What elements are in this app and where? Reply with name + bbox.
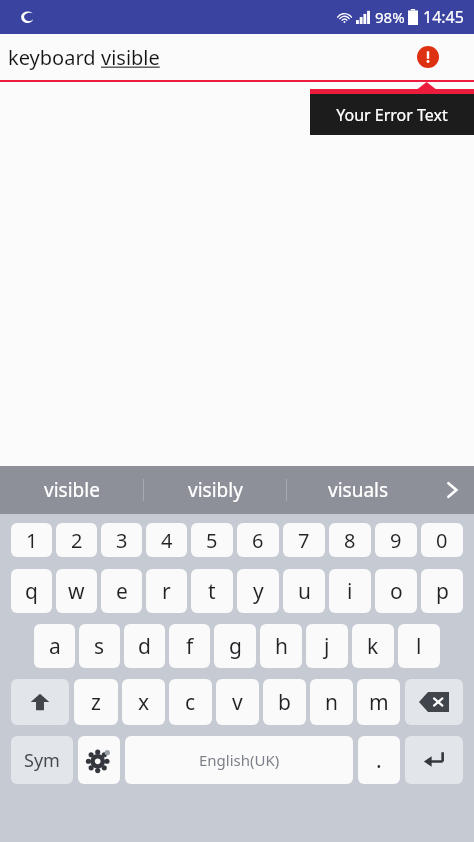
button[interactable]: s: [79, 624, 120, 668]
button[interactable]: Backspace: [405, 679, 463, 725]
button[interactable]: visible: [0, 466, 144, 514]
button[interactable]: Settings: [78, 736, 120, 784]
staticText: g: [229, 632, 242, 661]
staticText: 8: [344, 527, 356, 554]
staticText: a: [49, 632, 61, 661]
button[interactable]: a: [34, 624, 75, 668]
staticText: 14:45: [423, 6, 464, 28]
staticText: 1: [26, 527, 38, 554]
button[interactable]: h: [260, 624, 302, 668]
button[interactable]: n: [310, 679, 353, 725]
staticText: s: [94, 632, 105, 661]
button[interactable]: 9: [375, 523, 417, 557]
staticText: u: [298, 577, 311, 606]
button[interactable]: p: [421, 569, 463, 613]
button[interactable]: e: [101, 569, 142, 613]
staticText: e: [116, 577, 128, 606]
button[interactable]: 6: [237, 523, 279, 557]
staticText: .: [376, 746, 382, 775]
button[interactable]: u: [283, 569, 325, 613]
staticText: keyboard: [8, 44, 101, 71]
staticText: y: [253, 577, 264, 606]
staticText: w: [68, 577, 85, 606]
staticText: d: [138, 632, 151, 661]
staticText: f: [186, 632, 194, 661]
button[interactable]: 3: [101, 523, 142, 557]
button[interactable]: 0: [421, 523, 463, 557]
staticText: o: [390, 577, 403, 606]
button[interactable]: k: [352, 624, 394, 668]
button[interactable]: x: [122, 679, 165, 725]
staticText: 4: [161, 527, 173, 554]
staticText: visible: [44, 477, 100, 503]
staticText: q: [25, 577, 38, 606]
staticText: visibly: [188, 477, 243, 503]
button[interactable]: l: [398, 624, 440, 668]
staticText: visuals: [328, 477, 389, 503]
button[interactable]: 7: [283, 523, 325, 557]
staticText: b: [278, 688, 291, 717]
button[interactable]: c: [169, 679, 212, 725]
button[interactable]: z: [74, 679, 118, 725]
button[interactable]: 2: [56, 523, 97, 557]
button[interactable]: j: [306, 624, 348, 668]
staticText: i: [347, 577, 353, 606]
button[interactable]: More suggestions: [430, 466, 474, 514]
button[interactable]: English(UK): [125, 736, 353, 784]
staticText: n: [325, 688, 338, 717]
staticText: 9: [390, 527, 402, 554]
staticText: k: [367, 632, 379, 661]
staticText: 98%: [375, 7, 405, 27]
button[interactable]: Enter: [405, 736, 463, 784]
staticText: 3: [116, 527, 128, 554]
button[interactable]: b: [263, 679, 306, 725]
button[interactable]: Error: [417, 46, 439, 68]
button[interactable]: d: [124, 624, 165, 668]
button[interactable]: f: [169, 624, 210, 668]
button[interactable]: o: [375, 569, 417, 613]
button[interactable]: 5: [191, 523, 233, 557]
staticText: h: [275, 632, 288, 661]
button[interactable]: r: [146, 569, 187, 613]
staticText: r: [162, 577, 171, 606]
staticText: Sym: [24, 748, 60, 773]
staticText: j: [324, 632, 330, 661]
button[interactable]: m: [357, 679, 400, 725]
button[interactable]: 8: [329, 523, 371, 557]
staticText: English(UK): [199, 750, 280, 770]
button[interactable]: y: [237, 569, 279, 613]
button[interactable]: w: [56, 569, 97, 613]
button[interactable]: Shift: [11, 679, 69, 725]
staticText: 0: [436, 527, 448, 554]
button[interactable]: Sym: [11, 736, 73, 784]
button[interactable]: q: [11, 569, 52, 613]
staticText: visible: [101, 44, 160, 71]
button[interactable]: i: [329, 569, 371, 613]
staticText: m: [369, 688, 389, 717]
button[interactable]: visuals: [287, 466, 430, 514]
staticText: 5: [206, 527, 218, 554]
staticText: z: [91, 688, 101, 717]
button[interactable]: v: [216, 679, 259, 725]
staticText: 2: [71, 527, 83, 554]
button[interactable]: 1: [11, 523, 52, 557]
staticText: v: [232, 688, 243, 717]
button[interactable]: visibly: [144, 466, 287, 514]
staticText: l: [416, 632, 422, 661]
button[interactable]: .: [358, 736, 400, 784]
staticText: 7: [298, 527, 310, 554]
button[interactable]: t: [191, 569, 233, 613]
button[interactable]: 4: [146, 523, 187, 557]
button[interactable]: g: [214, 624, 256, 668]
staticText: p: [436, 577, 449, 606]
staticText: x: [138, 688, 150, 717]
staticText: Your Error Text: [336, 104, 448, 126]
staticText: c: [185, 688, 196, 717]
staticText: 6: [252, 527, 264, 554]
staticText: t: [208, 577, 216, 606]
